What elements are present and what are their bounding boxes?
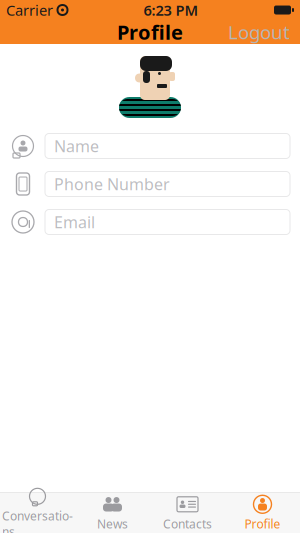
staticText: Name [54, 135, 99, 157]
staticText: Profile [244, 516, 280, 532]
staticText: Conversations [2, 508, 73, 533]
button[interactable]: Conversations [0, 493, 75, 533]
staticText: Logout [228, 20, 290, 44]
staticText: Phone Number [54, 173, 170, 195]
staticText: Profile [117, 19, 183, 45]
button[interactable]: Contacts [150, 493, 225, 533]
button[interactable]: News [75, 493, 150, 533]
staticText: Email [54, 211, 95, 233]
staticText: Carrier [6, 0, 53, 20]
staticText: Contacts [163, 516, 212, 532]
button[interactable]: Logout [218, 14, 300, 50]
staticText: 6:23 PM [143, 0, 198, 20]
button[interactable]: Profile [225, 493, 300, 533]
staticText: News [97, 516, 128, 532]
staticText [53, 0, 57, 20]
